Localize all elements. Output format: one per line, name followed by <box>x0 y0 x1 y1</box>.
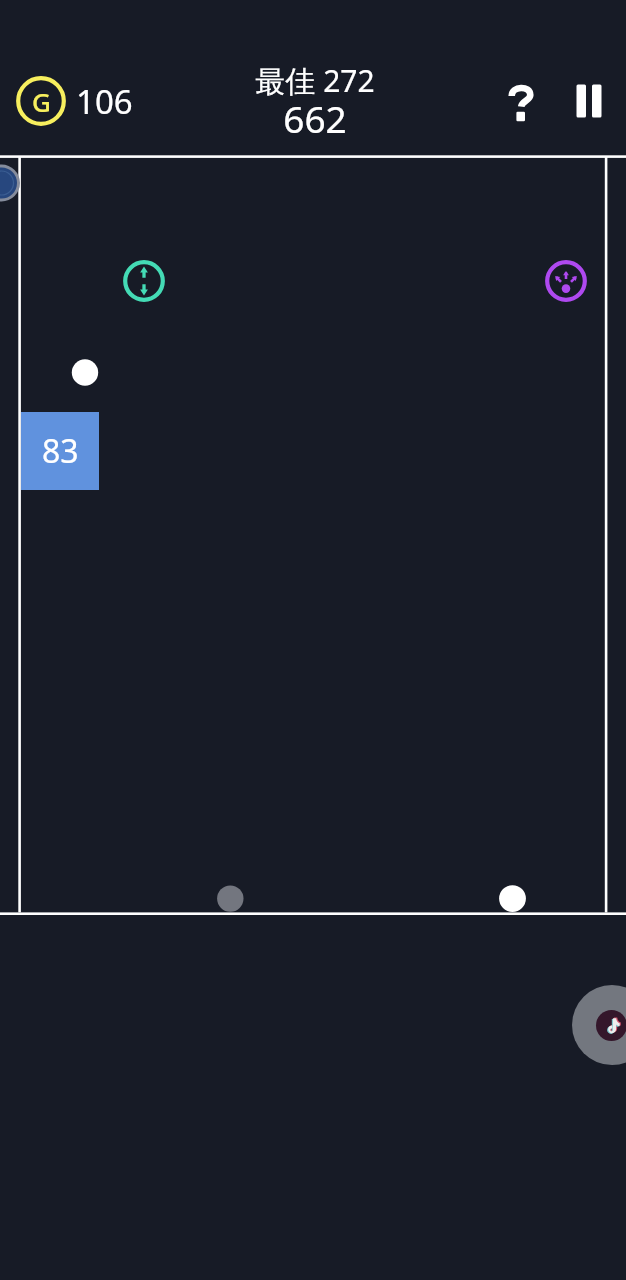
button[interactable]: Pause <box>564 76 614 126</box>
button[interactable]: G <box>16 76 133 126</box>
button[interactable]: Help <box>490 61 550 121</box>
staticText: 106 <box>76 79 133 124</box>
staticText: 最佳 272 <box>255 60 375 101</box>
staticText: G <box>32 84 51 119</box>
staticText: 83 <box>42 429 79 473</box>
staticText: 662 <box>283 93 347 143</box>
button[interactable]: TikTok <box>572 985 626 1065</box>
